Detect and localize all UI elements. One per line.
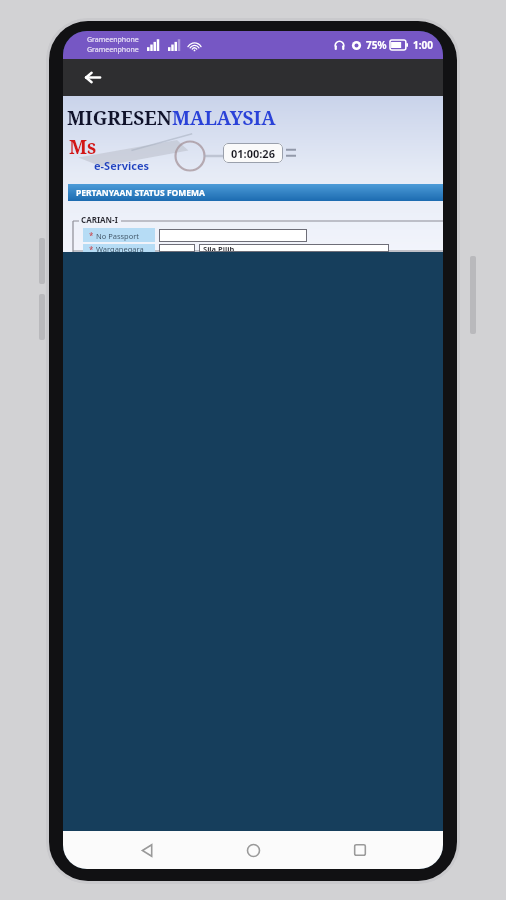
button[interactable]: Back bbox=[73, 59, 111, 96]
staticText: * bbox=[89, 230, 94, 241]
staticText: 75% bbox=[366, 38, 387, 52]
staticText: Warganegara bbox=[96, 244, 144, 252]
staticText: Grameenphone bbox=[87, 45, 139, 55]
button[interactable] bbox=[159, 229, 307, 242]
staticText: MIGRESEN bbox=[67, 105, 177, 131]
staticText: * bbox=[89, 244, 94, 252]
staticText: 01:00:26 bbox=[231, 146, 275, 161]
button[interactable] bbox=[159, 244, 195, 252]
staticText: CARIAN-I bbox=[81, 214, 118, 225]
staticText: Ms bbox=[69, 134, 97, 160]
staticText: PERTANYAAN STATUS FOMEMA bbox=[76, 187, 205, 199]
staticText: Grameenphone bbox=[87, 35, 139, 45]
button[interactable]: Sila Pilih bbox=[199, 244, 389, 252]
staticText: e-Services bbox=[94, 158, 149, 173]
button[interactable]: Recent apps bbox=[337, 831, 383, 869]
staticText: MALAYSIA bbox=[172, 105, 276, 131]
staticText: 1:00 bbox=[413, 38, 433, 52]
button[interactable]: Back bbox=[124, 831, 170, 869]
staticText: Sila Pilih bbox=[203, 244, 235, 252]
staticText: No Passport bbox=[96, 231, 140, 241]
button[interactable]: PERTANYAAN STATUS FOMEMA bbox=[68, 184, 443, 201]
button[interactable]: Home bbox=[230, 831, 276, 869]
